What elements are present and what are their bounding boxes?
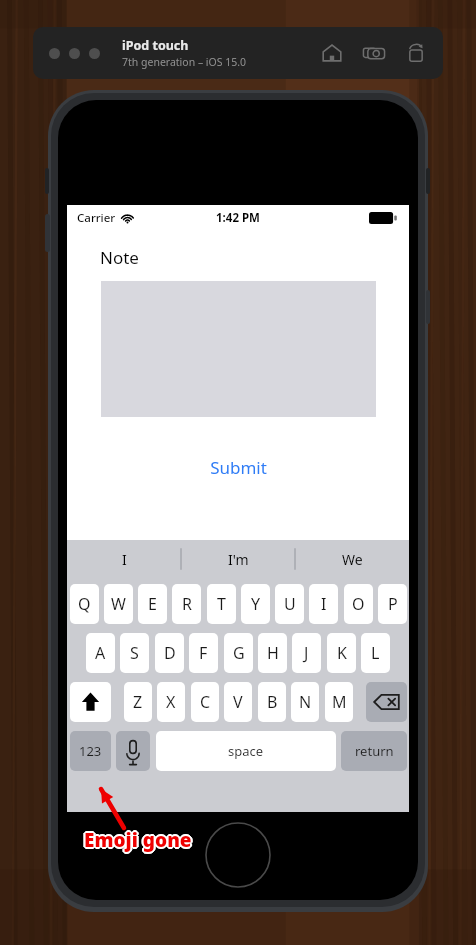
staticText: Emoji gone [84,829,192,855]
staticText: Emoji gone [84,827,192,853]
button[interactable]: P [378,584,407,624]
staticText: E [148,593,157,615]
staticText: Q [78,593,91,615]
button[interactable]: B [258,682,286,722]
staticText: Emoji gone [82,827,190,853]
button[interactable]: Submit [67,450,409,484]
staticText: F [199,642,208,664]
staticText: C [200,691,211,713]
staticText: Submit [210,456,267,479]
staticText: space [228,742,264,760]
button[interactable]: Screenshot [363,42,385,64]
button[interactable]: D [155,633,184,673]
staticText: B [267,691,278,713]
staticText: Emoji gone [86,827,194,853]
button[interactable]: Y [241,584,270,624]
staticText: V [233,691,243,713]
button[interactable]: C [191,682,219,722]
staticText: P [388,593,398,615]
staticText: W [111,593,126,615]
button[interactable]: A [86,633,115,673]
button[interactable]: H [258,633,287,673]
staticText: U [284,593,296,615]
staticText: Emoji gone [83,828,191,854]
staticText: Emoji gone [85,826,193,852]
button[interactable]: M [325,682,353,722]
button[interactable]: Rotate [405,42,427,64]
staticText: Z [133,691,143,713]
staticText: G [233,642,245,664]
button[interactable]: I [309,584,338,624]
staticText: M [332,691,347,713]
staticText: Y [251,593,261,615]
button[interactable]: N [291,682,319,722]
button[interactable]: return [341,731,407,771]
button[interactable] [69,48,80,59]
staticText: T [217,593,226,615]
staticText: Note [100,246,139,269]
staticText: return [355,742,394,760]
button[interactable]: Z [124,682,152,722]
button[interactable]: Shift [70,682,111,722]
button[interactable]: L [361,633,390,673]
button[interactable]: Dictate [116,731,150,771]
staticText: X [166,691,176,713]
staticText: N [299,691,312,713]
staticText: Emoji gone [83,826,191,852]
button[interactable]: U [275,584,304,624]
staticText: Carrier [77,210,116,226]
button[interactable]: K [327,633,356,673]
button[interactable]: R [172,584,201,624]
staticText: L [371,642,380,664]
button[interactable]: We [295,540,409,578]
button[interactable]: Q [70,584,99,624]
staticText: I'm [228,550,249,569]
button[interactable]: O [344,584,373,624]
staticText: O [352,593,365,615]
button[interactable]: V [224,682,252,722]
staticText: H [267,642,279,664]
button[interactable]: G [224,633,253,673]
staticText: A [95,642,106,664]
staticText: I [321,593,327,615]
staticText: iPod touch [122,37,189,54]
button[interactable] [49,48,60,59]
staticText: J [304,642,309,664]
staticText: S [130,642,139,664]
staticText: I [122,550,127,569]
button[interactable]: Backspace [366,682,407,722]
staticText: Emoji gone [85,828,193,854]
button[interactable]: J [292,633,321,673]
staticText: R [182,593,192,615]
staticText: 123 [79,742,102,760]
button[interactable]: X [157,682,185,722]
button[interactable]: Home [321,42,343,64]
staticText: D [164,642,176,664]
staticText: 7th generation – iOS 15.0 [122,55,247,69]
button[interactable]: I'm [181,540,295,578]
button[interactable] [89,48,100,59]
staticText: We [342,550,363,569]
button[interactable]: I [67,540,181,578]
button[interactable]: F [189,633,218,673]
staticText: 1:42 PM [216,210,260,226]
staticText: K [337,642,347,664]
button[interactable]: 123 [70,731,111,771]
button[interactable]: space [156,731,336,771]
button[interactable]: W [104,584,133,624]
button[interactable]: T [207,584,236,624]
staticText: Emoji gone [84,825,192,851]
button[interactable]: E [138,584,167,624]
button[interactable]: S [120,633,149,673]
